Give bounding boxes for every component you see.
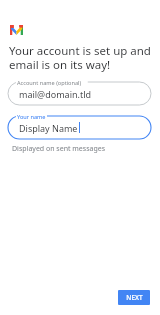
other: Gmail — [10, 25, 23, 35]
staticText: Display Name — [19, 122, 78, 134]
staticText: Your account is set up and email is on i… — [9, 43, 152, 72]
staticText: mail@domain.tld — [19, 88, 92, 100]
staticText: Account name (optional) — [17, 79, 82, 87]
button[interactable]: NEXT — [118, 290, 150, 305]
staticText: Your name — [17, 113, 46, 121]
staticText: Displayed on sent messages — [12, 144, 106, 154]
button[interactable]: Your name — [8, 116, 151, 139]
button[interactable]: Account name (optional) — [8, 82, 151, 105]
staticText: NEXT — [126, 293, 143, 302]
